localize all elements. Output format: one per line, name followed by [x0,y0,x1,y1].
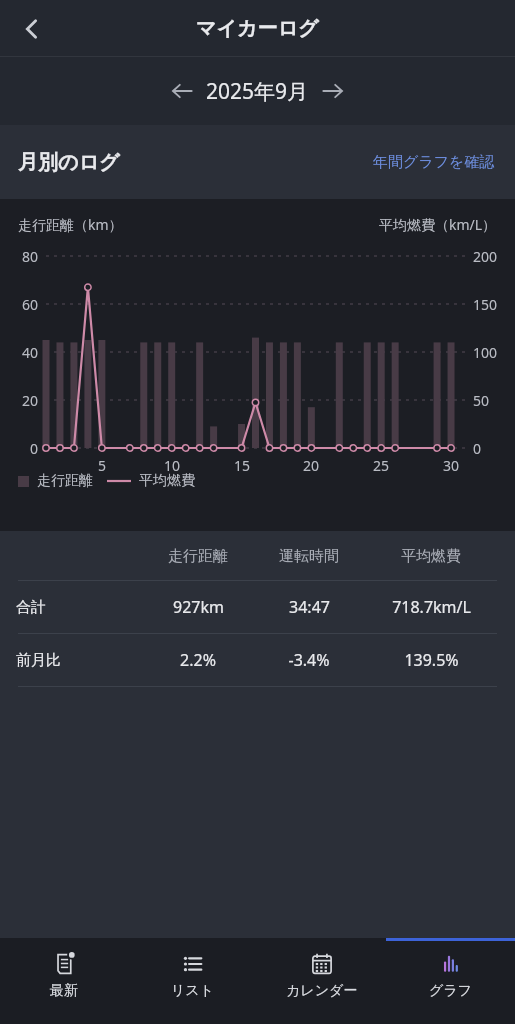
staticText: 合計 [16,598,46,617]
staticText: 139.5% [404,649,459,671]
staticText: 0 [473,439,515,458]
staticText: 10 [157,456,187,475]
staticText: -3.4% [288,649,330,671]
staticText: 20 [0,391,38,410]
staticText: 平均燃費 [139,472,195,490]
staticText: 20 [296,456,326,475]
staticText: 最新 [50,982,78,1000]
staticText: 15 [227,456,257,475]
button[interactable]: グラフ [386,938,515,1024]
button[interactable]: Previous month [160,69,204,113]
staticText: 200 [473,247,515,266]
staticText: 平均燃費 [401,547,461,566]
staticText: 60 [0,295,38,314]
staticText: リスト [171,982,214,1000]
button[interactable]: カレンダー [257,938,386,1024]
staticText: 80 [0,247,38,266]
staticText: 走行距離 [168,547,228,566]
staticText: 月別のログ [18,150,120,175]
button[interactable]: 年間グラフを確認 [371,145,497,180]
staticText: グラフ [429,982,472,1000]
button[interactable]: 最新 [0,938,128,1024]
staticText: 2.2% [180,649,216,671]
staticText: 34:47 [289,596,330,618]
staticText: 150 [473,295,515,314]
staticText: 25 [366,456,396,475]
staticText: 30 [436,456,466,475]
button[interactable]: リスト [128,938,257,1024]
staticText: 運転時間 [279,547,339,566]
button[interactable]: Back [8,5,56,53]
staticText: 走行距離（km） [18,215,123,234]
staticText: 年間グラフを確認 [373,153,495,172]
staticText: 2025年9月 [206,77,309,106]
staticText: 前月比 [16,651,61,670]
button[interactable]: Next month [311,69,355,113]
staticText: カレンダー [286,982,358,1000]
staticText: マイカーログ [196,16,319,41]
staticText: 100 [473,343,515,362]
staticText: 5 [87,456,117,475]
staticText: 走行距離 [37,472,93,490]
staticText: 718.7km/L [392,596,471,618]
staticText: 0 [0,439,38,458]
staticText: 平均燃費（km/L） [379,215,497,234]
staticText: 50 [473,391,515,410]
staticText: 40 [0,343,38,362]
staticText: 927km [173,596,224,618]
